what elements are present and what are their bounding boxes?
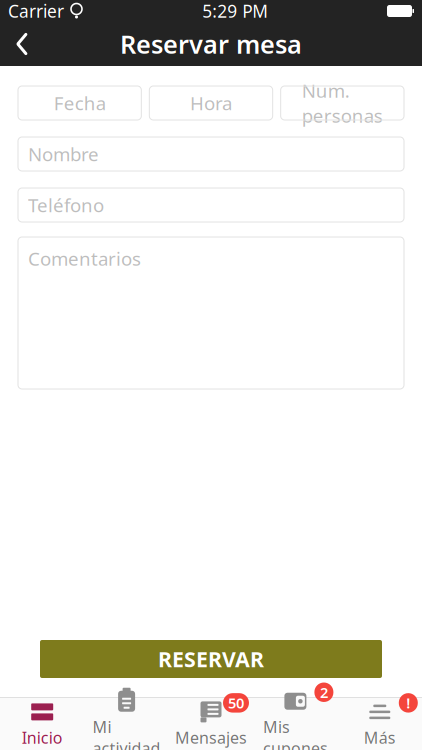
staticText: Más [364,727,396,748]
button[interactable]: 2 [253,700,338,748]
staticText: Mis cupones [263,716,328,750]
button[interactable]: Teléfono [18,188,404,222]
button[interactable]: Hora [149,86,273,120]
staticText: RESERVAR [158,645,264,673]
staticText: Fecha [54,91,106,115]
staticText: Nombre [28,142,99,166]
staticText: Hora [190,91,232,115]
button[interactable]: Mi actividad [84,700,169,748]
staticText: Comentarios [28,246,141,271]
staticText: Mensajes [175,727,247,748]
staticText: Inicio [22,727,63,748]
button[interactable]: 50 [169,700,253,748]
button[interactable]: RESERVAR [40,640,382,678]
button[interactable]: Fecha [18,86,141,120]
staticText: Carrier [8,0,64,22]
staticText: Reservar mesa [120,27,302,61]
staticText: 5:29 PM [202,0,268,22]
staticText: Teléfono [28,193,104,217]
staticText: ! [406,693,410,713]
staticText: Num. personas [302,78,383,128]
button[interactable]: Back [0,22,44,66]
button[interactable]: Inicio [0,700,84,748]
button[interactable]: ! [338,700,422,748]
staticText: 50 [228,693,244,713]
staticText: Mi actividad [93,716,161,750]
button[interactable]: Nombre [18,137,404,171]
button[interactable]: Num. personas [281,86,404,120]
staticText: 2 [320,682,328,702]
button[interactable]: Comentarios [18,237,404,389]
